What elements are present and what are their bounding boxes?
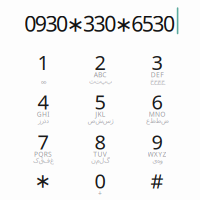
staticText: ه ه (40, 77, 46, 85)
staticText: ج چ ح خ (149, 77, 165, 85)
staticText: ∗ (34, 169, 51, 192)
staticText: ABC (94, 70, 106, 79)
staticText: 4 (37, 88, 48, 115)
staticText: + (98, 189, 102, 198)
button[interactable]: 3 (128, 42, 185, 82)
staticText: JKL (95, 110, 105, 119)
staticText: 9 (151, 128, 162, 155)
button[interactable]: # (128, 161, 185, 200)
button[interactable]: 4 (14, 82, 71, 121)
staticText: ض ط ظ ع (145, 117, 169, 124)
staticText: 1 (37, 49, 48, 76)
staticText: 8 (94, 128, 105, 155)
staticText: 0930∗330∗6530 (24, 9, 175, 37)
staticText: 7 (37, 128, 48, 155)
staticText: 6 (151, 88, 162, 115)
staticText: ژ س ش ص (87, 117, 113, 124)
button[interactable]: 8 (71, 122, 128, 161)
button[interactable]: 1 (14, 42, 71, 82)
button[interactable]: 6 (128, 82, 185, 121)
staticText: گ ل م ن (90, 157, 110, 164)
button[interactable]: 5 (71, 82, 128, 121)
button[interactable]: 7 (14, 122, 71, 161)
staticText: # (150, 167, 163, 194)
button[interactable]: 9 (128, 122, 185, 161)
button[interactable]: 0 (71, 161, 128, 200)
staticText: 3 (151, 49, 162, 76)
button[interactable]: 2 (71, 42, 128, 82)
staticText: DEF (151, 70, 163, 79)
button[interactable]: ∗ (14, 161, 71, 200)
staticText: GHI (37, 110, 49, 119)
staticText: 2 (94, 49, 105, 76)
staticText: 0 (94, 167, 105, 194)
staticText: MNO (149, 110, 165, 119)
staticText: ب پ ت ث (88, 77, 112, 85)
staticText: TUV (93, 150, 107, 159)
staticText: 5 (94, 88, 105, 115)
staticText: غ ف ق ک (32, 157, 54, 164)
staticText: PQRS (34, 150, 52, 159)
staticText: و ه ی (152, 157, 162, 164)
staticText: WXYZ (148, 150, 166, 159)
staticText: د ذ ر ز (37, 117, 49, 124)
